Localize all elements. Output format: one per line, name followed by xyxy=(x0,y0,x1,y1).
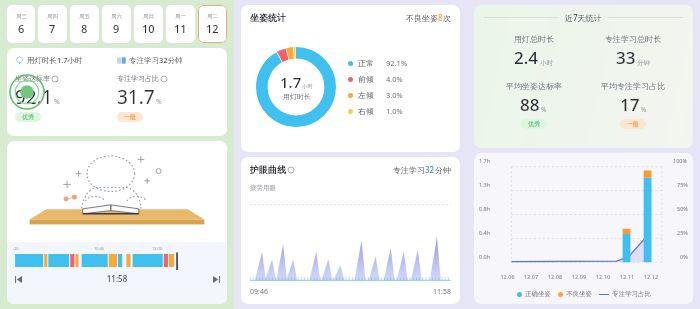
staticText: 12:00 xyxy=(128,246,186,251)
staticText: 右倾 xyxy=(358,106,382,116)
staticText: 专注学习32分钟 xyxy=(129,55,183,65)
staticText: 专注学习 xyxy=(393,165,425,175)
staticText: 12.11 xyxy=(615,273,639,280)
staticText: 平均专注学习占比 xyxy=(601,81,665,91)
staticText: 不良坐姿 xyxy=(406,13,438,23)
staticText: % xyxy=(641,105,647,114)
staticText: 8 xyxy=(438,12,443,23)
staticText: 12.10 xyxy=(591,273,615,280)
staticText: 1.7 xyxy=(280,72,302,92)
staticText: 31.7 xyxy=(117,84,155,110)
staticText: 周四 xyxy=(47,13,58,20)
staticText: 不良坐姿 xyxy=(566,290,592,298)
staticText: 8 xyxy=(81,21,88,36)
staticText: 疲劳用眼 xyxy=(250,184,276,192)
staticText: 12.09 xyxy=(567,273,591,280)
staticText: 100% xyxy=(673,157,688,164)
staticText: 周三 xyxy=(16,13,27,20)
staticText: 一般 xyxy=(124,113,136,121)
staticText: 1.0% xyxy=(386,106,403,116)
staticText: 0.0h xyxy=(479,253,491,260)
staticText: 3.0% xyxy=(386,90,403,100)
staticText: 平均坐姿达标率 xyxy=(506,81,562,91)
staticText: 88 xyxy=(520,93,540,116)
staticText: % xyxy=(541,105,547,114)
staticText: 周一 xyxy=(175,13,186,20)
staticText: 优秀 xyxy=(22,113,34,121)
staticText: 32 xyxy=(425,164,435,175)
staticText: 12.12 xyxy=(639,273,663,280)
staticText: 9 xyxy=(113,21,120,36)
staticText: 1.3h xyxy=(479,181,491,188)
button[interactable]: 周五 xyxy=(70,5,99,43)
staticText: 6 xyxy=(18,21,25,36)
button[interactable]: 周四 xyxy=(38,5,67,43)
staticText: 92.1 xyxy=(15,84,53,110)
staticText: 专注学习占比 xyxy=(612,290,651,298)
staticText: 周日 xyxy=(143,13,154,20)
staticText: 92.1% xyxy=(386,58,408,68)
staticText: 7 xyxy=(49,21,56,36)
staticText: 75% xyxy=(677,181,688,188)
staticText: 周二 xyxy=(207,13,218,20)
staticText: 1.7h xyxy=(479,157,491,164)
staticText: 4.0% xyxy=(386,74,403,84)
staticText: 50% xyxy=(677,205,688,212)
staticText: 优秀 xyxy=(528,120,540,128)
staticText: 10:46 xyxy=(70,246,128,251)
staticText: 分钟 xyxy=(637,59,650,67)
staticText: 小时 xyxy=(540,59,553,67)
button[interactable]: 周一 xyxy=(166,5,195,43)
staticText: 12.07 xyxy=(519,273,543,280)
staticText: % xyxy=(156,97,162,107)
staticText: 近7天统计 xyxy=(565,12,602,23)
staticText: 11:58 xyxy=(23,273,211,284)
button[interactable]: 周日 xyxy=(134,5,163,43)
staticText: 专注学习占比 xyxy=(117,74,159,83)
staticText: 用灯时长 xyxy=(283,92,311,101)
staticText: 0% xyxy=(680,253,688,260)
button[interactable]: 周三 xyxy=(7,5,35,43)
staticText: 09:46 xyxy=(250,287,268,297)
staticText: 用灯总时长 xyxy=(514,34,554,44)
staticText: 33 xyxy=(616,46,636,69)
staticText: 次 xyxy=(443,13,451,23)
staticText: 25% xyxy=(677,229,688,236)
staticText: 分钟 xyxy=(435,165,451,175)
button[interactable]: Previous xyxy=(13,274,23,284)
staticText: 小时 xyxy=(302,83,313,90)
staticText: 10 xyxy=(142,21,155,36)
staticText: 11 xyxy=(174,21,187,36)
button[interactable]: 周二 xyxy=(198,5,227,43)
staticText: 坐姿达标率 xyxy=(15,74,50,83)
button[interactable]: 周六 xyxy=(102,5,131,43)
staticText: 0.8h xyxy=(479,205,491,212)
staticText: :20 xyxy=(13,246,70,251)
staticText: 前倾 xyxy=(358,74,382,84)
staticText: 护眼曲线 xyxy=(250,164,286,175)
staticText: 12 xyxy=(206,21,219,36)
staticText: % xyxy=(54,97,60,107)
button[interactable]: Next xyxy=(211,274,221,284)
staticText: 2.4 xyxy=(514,46,539,69)
staticText: 一般 xyxy=(627,120,639,128)
staticText: 左倾 xyxy=(358,90,382,100)
staticText: 用灯时长1.7小时 xyxy=(27,55,83,65)
staticText: 周五 xyxy=(79,13,90,20)
staticText: 12.08 xyxy=(543,273,567,280)
staticText: 0.4h xyxy=(479,229,491,236)
staticText: 11:58 xyxy=(433,287,451,297)
staticText: 17 xyxy=(620,93,640,116)
staticText: 正常 xyxy=(358,58,382,68)
staticText: 周六 xyxy=(111,13,122,20)
staticText: 专注学习总时长 xyxy=(605,34,661,44)
staticText: 正确坐姿 xyxy=(525,290,551,298)
staticText: 12.06 xyxy=(496,273,519,280)
staticText: 坐姿统计 xyxy=(250,12,286,23)
